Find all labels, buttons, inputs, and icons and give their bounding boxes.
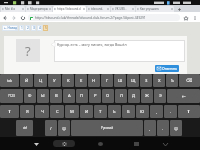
button[interactable]: Русский [71, 120, 143, 136]
button[interactable]: Ы [37, 89, 49, 103]
button[interactable]: М [65, 105, 79, 118]
staticText: ? [25, 42, 31, 60]
button[interactable]: Д [128, 89, 140, 103]
button[interactable]: Ъ [166, 74, 178, 87]
button[interactable]: Ч [35, 105, 49, 118]
button[interactable]: ⬆ [178, 105, 200, 118]
staticText: VK UBS - forum [115, 7, 131, 11]
button[interactable]: 1 [19, 25, 24, 31]
staticText: А [68, 93, 71, 99]
button[interactable]: Т [94, 105, 107, 118]
staticText: В [55, 93, 58, 99]
button[interactable]: https://tdsound.club/threads/tdsound-clu… [28, 14, 180, 21]
staticText: Щ [131, 78, 136, 84]
button[interactable]: Я [20, 105, 34, 118]
button[interactable]: VK UBS - forum [111, 6, 135, 12]
staticText: ☺ [62, 126, 67, 131]
button[interactable]: Щ [127, 74, 139, 87]
button[interactable]: ctrl [16, 120, 33, 136]
button[interactable]: Menu [190, 13, 199, 22]
button[interactable]: Ответить [155, 65, 179, 72]
button[interactable]: Ю [136, 105, 149, 118]
button[interactable]: Home [94, 138, 106, 150]
button[interactable]: ☺ [58, 120, 70, 136]
button[interactable]: ☺ [170, 120, 182, 136]
button[interactable]: В [50, 89, 62, 103]
staticText: Курсор-есть – могу писать, когда Вошёл [57, 42, 127, 47]
staticText: ⬆ [8, 109, 12, 114]
staticText: К [67, 78, 70, 84]
staticText: 5 [45, 26, 47, 30]
button[interactable]: Ш [114, 74, 126, 87]
button[interactable]: , [150, 105, 163, 118]
button[interactable]: 5 [43, 25, 48, 31]
button[interactable]: Ь [108, 105, 121, 118]
button[interactable]: ← [167, 89, 200, 103]
button[interactable]: Collapse [159, 138, 171, 150]
button[interactable]: Й [20, 74, 33, 87]
button[interactable]: П [76, 89, 88, 103]
button[interactable]: tdsound-club [87, 6, 110, 12]
button[interactable]: Back [0, 13, 9, 22]
button[interactable]: 2 [25, 25, 30, 31]
button[interactable]: Л [115, 89, 127, 103]
button[interactable]: У [48, 74, 61, 87]
button[interactable]: . [164, 105, 177, 118]
button[interactable]: Bookmark [181, 13, 190, 22]
button[interactable]: С [50, 105, 64, 118]
button[interactable]: Reload [18, 13, 27, 22]
button[interactable]: . [157, 120, 169, 136]
staticText: Ч [41, 109, 44, 115]
staticText: https://tdsound.cl [57, 7, 82, 11]
button[interactable]: / [45, 120, 57, 136]
button[interactable]: А [63, 89, 75, 103]
staticText: 2 [27, 26, 29, 30]
button[interactable]: Б [122, 105, 135, 118]
button[interactable]: Ж [141, 89, 153, 103]
button[interactable]: Модераторы [26, 6, 52, 12]
button[interactable]: Ф [24, 89, 36, 103]
button[interactable]: ? [16, 39, 40, 62]
staticText: Ф [28, 93, 32, 99]
button[interactable]: З [140, 74, 152, 87]
button[interactable]: 3 [31, 25, 36, 31]
button[interactable]: Forward [9, 13, 18, 22]
staticText: https://tdsound.club/threads/tdsound-clu… [35, 16, 146, 20]
button[interactable]: ⬆ [0, 105, 19, 118]
button[interactable]: Switch input method [53, 140, 75, 147]
button[interactable]: Recent apps [130, 138, 142, 150]
button[interactable]: Как улучшить [136, 6, 174, 12]
button[interactable]: Е [75, 74, 87, 87]
button[interactable]: New tab [177, 7, 182, 12]
staticText: Б [127, 109, 130, 115]
staticText: Ответить [162, 66, 178, 71]
button[interactable]: Hide keyboard [30, 138, 42, 150]
button[interactable]: Moi kla tekst [1, 6, 25, 12]
button[interactable]: Н [88, 74, 100, 87]
button[interactable]: И [80, 105, 93, 118]
button[interactable]: Х [153, 74, 165, 87]
button[interactable]: ← Назад [2, 25, 18, 31]
button[interactable]: https://tdsound.cl [53, 6, 86, 12]
button[interactable]: Р [89, 89, 101, 103]
button[interactable]: Г [101, 74, 113, 87]
staticText: tdsound-club [91, 7, 106, 11]
button[interactable]: О [102, 89, 114, 103]
button[interactable]: tab [0, 74, 19, 87]
button[interactable]: К [62, 74, 74, 87]
staticText: Moi kla tekst [5, 7, 21, 11]
button[interactable]: Э [154, 89, 166, 103]
button[interactable]: Ц [34, 74, 47, 87]
staticText: Ы [41, 93, 45, 99]
staticText: Ю [140, 109, 145, 115]
button[interactable]: 4 [37, 25, 42, 31]
button[interactable]: ?123 [0, 89, 23, 103]
button[interactable]: , [144, 120, 156, 136]
staticText: Ж [145, 93, 149, 99]
staticText: Т [99, 109, 102, 115]
button[interactable]: ⌫ [179, 74, 200, 87]
staticText: ← Назад [4, 26, 17, 30]
